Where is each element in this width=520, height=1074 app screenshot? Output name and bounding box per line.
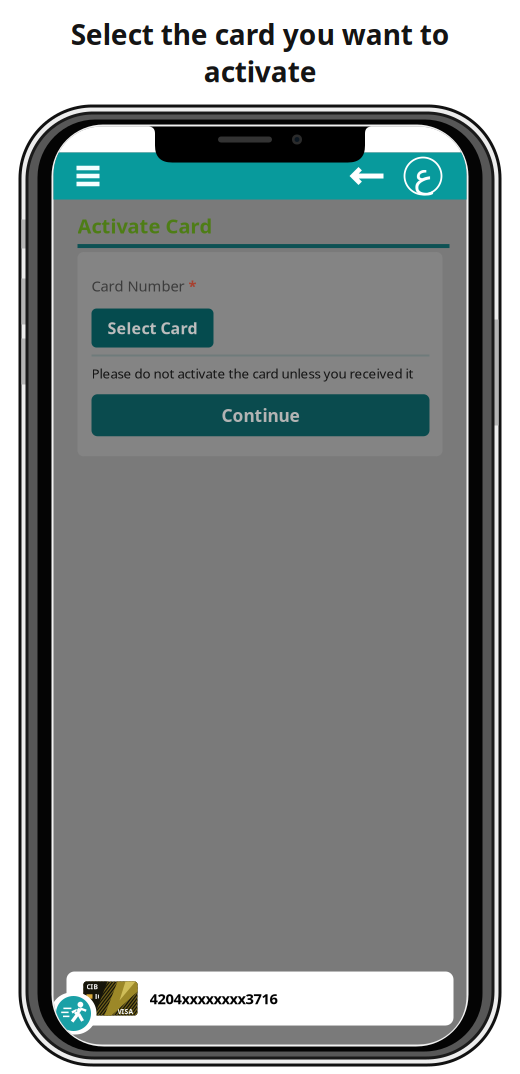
staticText: * [188, 276, 196, 296]
button[interactable]: Quick actions [50, 992, 96, 1034]
button[interactable]: Continue [91, 394, 429, 436]
staticText: Select the card you want to activate [70, 15, 449, 90]
staticText: ع [413, 157, 433, 195]
staticText: VISA [117, 1007, 133, 1016]
staticText: CIB [86, 982, 97, 991]
button[interactable]: Menu [66, 153, 109, 199]
staticText: Continue [221, 404, 299, 427]
staticText: Please do not activate the card unless y… [91, 364, 413, 382]
staticText: Activate Card [77, 212, 212, 239]
button[interactable]: Switch to Arabic [400, 153, 445, 198]
button[interactable]: Back [341, 152, 391, 200]
staticText: Select Card [107, 317, 197, 339]
staticText: 4204xxxxxxxx3716 [149, 989, 277, 1008]
button[interactable]: Select Card [91, 308, 213, 347]
staticText: Card Number [91, 276, 184, 296]
